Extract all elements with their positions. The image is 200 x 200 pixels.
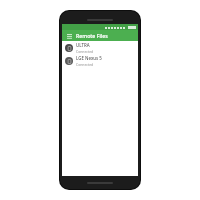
button[interactable]: ULTRA [62,41,138,54]
staticText: LGE Nexus 5 [76,55,102,61]
staticText: Connected [76,49,94,54]
button[interactable]: Open navigation menu [65,32,73,40]
staticText: Connected [76,62,94,67]
button[interactable]: LGE Nexus 5 [62,54,138,67]
staticText: Remote Files [76,32,108,39]
staticText: ULTRA [76,42,90,48]
